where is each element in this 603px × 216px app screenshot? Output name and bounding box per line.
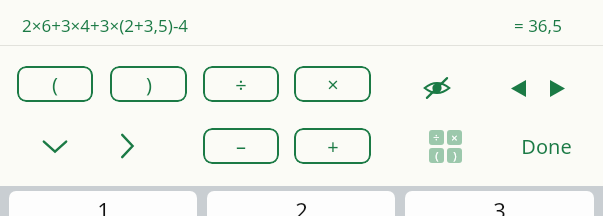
staticText: Done: [521, 133, 572, 160]
staticText: (: [435, 148, 439, 163]
button[interactable]: Hide result: [417, 68, 457, 108]
staticText: –: [236, 133, 246, 160]
button[interactable]: ÷: [203, 66, 279, 102]
button[interactable]: ×: [294, 66, 371, 102]
button[interactable]: Previous field: [33, 126, 77, 166]
staticText: +: [327, 133, 339, 160]
button[interactable]: 2: [207, 191, 395, 216]
staticText: 3: [493, 195, 506, 216]
button[interactable]: Switch keyboard: [423, 124, 467, 168]
staticText: ×: [327, 71, 339, 98]
staticText: 2×6+3×4+3×(2+3,5)-4: [22, 14, 189, 37]
button[interactable]: (: [17, 66, 93, 102]
staticText: 2: [295, 195, 308, 216]
staticText: ÷: [433, 130, 440, 145]
button[interactable]: Move cursor right: [539, 70, 575, 106]
button[interactable]: –: [203, 128, 279, 164]
button[interactable]: 1: [9, 191, 197, 216]
button[interactable]: 3: [405, 191, 594, 216]
staticText: = 36,5: [514, 14, 562, 37]
staticText: 1: [97, 195, 110, 216]
button[interactable]: Done: [508, 128, 584, 164]
staticText: (: [52, 71, 58, 98]
button[interactable]: +: [294, 128, 371, 164]
staticText: ): [453, 148, 457, 163]
button[interactable]: ): [110, 66, 187, 102]
button[interactable]: Next field: [105, 126, 149, 166]
staticText: ×: [451, 130, 458, 145]
button[interactable]: Move cursor left: [500, 70, 536, 106]
staticText: ): [146, 71, 152, 98]
staticText: ÷: [235, 71, 247, 98]
